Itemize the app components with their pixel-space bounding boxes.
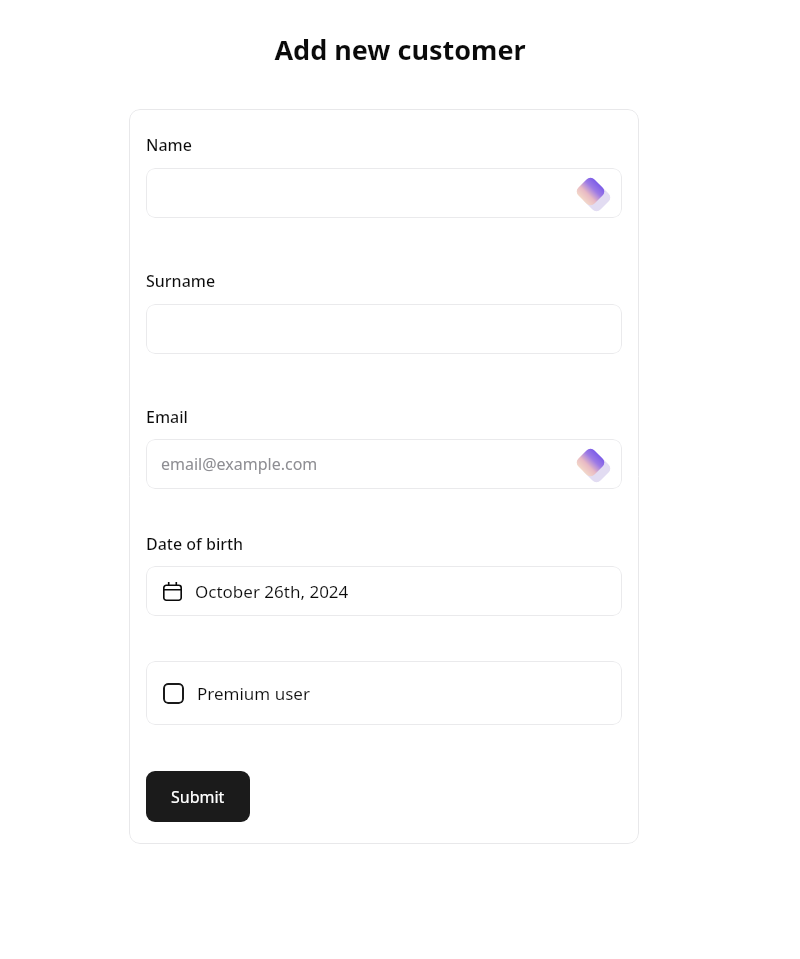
- button[interactable]: October 26th, 2024: [146, 566, 622, 616]
- staticText: October 26th, 2024: [195, 580, 349, 603]
- staticText: Surname: [146, 270, 216, 292]
- staticText: Email: [146, 406, 188, 428]
- staticText: Premium user: [197, 682, 310, 705]
- staticText: Add new customer: [0, 31, 800, 68]
- staticText: Name: [146, 134, 192, 156]
- button[interactable]: Premium user: [146, 661, 622, 725]
- staticText: email@example.com: [161, 453, 318, 475]
- button[interactable]: email@example.com: [146, 439, 622, 489]
- button[interactable]: [146, 304, 622, 354]
- staticText: Submit: [171, 786, 225, 808]
- button[interactable]: Submit: [146, 771, 250, 822]
- button[interactable]: [146, 168, 622, 218]
- staticText: Date of birth: [146, 533, 244, 555]
